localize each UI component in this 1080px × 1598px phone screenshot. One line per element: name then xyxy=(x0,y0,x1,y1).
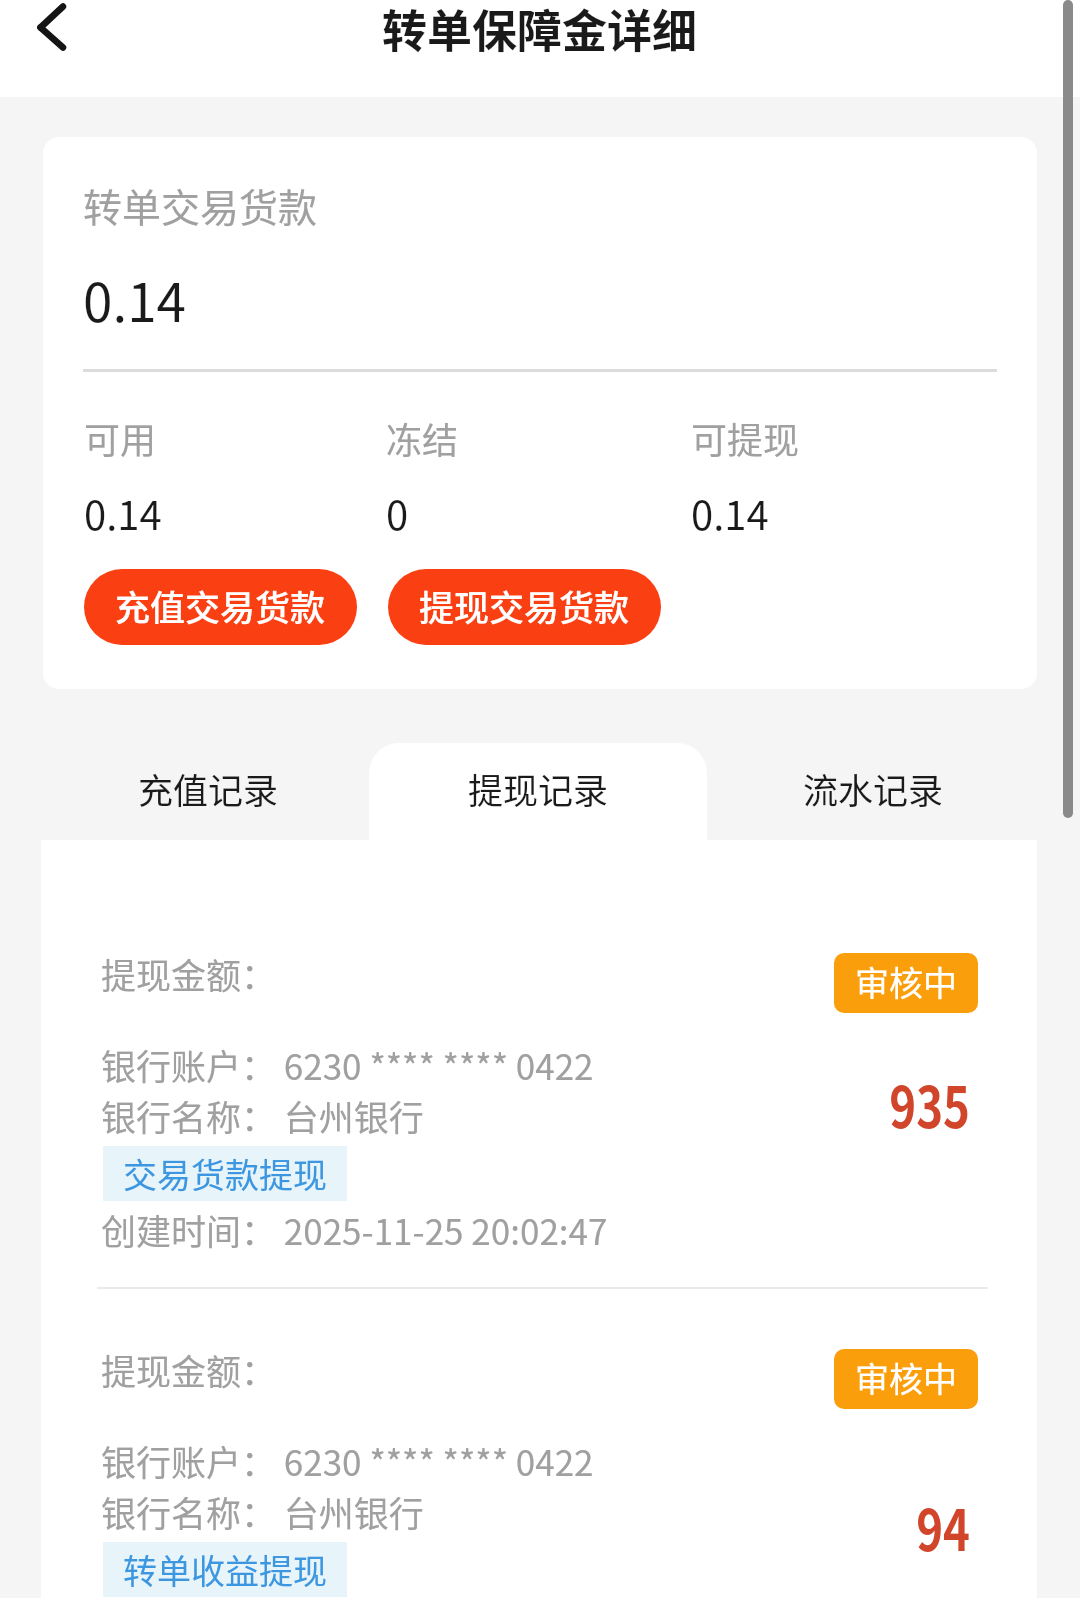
staticText: 提现金额： xyxy=(101,948,277,999)
staticText: 银行名称： 台州银行 xyxy=(101,1090,424,1141)
button[interactable]: 充值记录 xyxy=(41,743,369,843)
staticText: 充值记录 xyxy=(138,763,279,814)
staticText: 0.14 xyxy=(84,484,162,542)
staticText: 转单交易货款 xyxy=(83,177,318,233)
button[interactable]: 充值交易货款 xyxy=(84,569,357,645)
staticText: 0.14 xyxy=(83,261,186,338)
staticText: 审核中 xyxy=(855,957,957,1006)
button[interactable]: 提现记录 xyxy=(369,743,707,843)
staticText: 提现金额： xyxy=(101,1344,277,1395)
button[interactable]: 审核中 xyxy=(834,1349,978,1409)
staticText: 充值交易货款 xyxy=(115,580,326,631)
staticText: 提现记录 xyxy=(468,763,609,814)
button[interactable]: 提现交易货款 xyxy=(388,569,661,645)
staticText: 转单保障金详细 xyxy=(382,0,698,61)
staticText: 提现交易货款 xyxy=(419,580,630,631)
staticText: 0.14 xyxy=(691,484,769,542)
staticText: 可用 xyxy=(84,412,157,464)
button[interactable]: Back xyxy=(12,0,68,56)
button[interactable] xyxy=(41,840,1037,1288)
staticText: 0 xyxy=(386,484,409,542)
staticText: 可提现 xyxy=(691,412,800,464)
staticText: 935 xyxy=(757,1062,970,1145)
staticText: 银行名称： 台州银行 xyxy=(101,1486,424,1537)
staticText: 转单收益提现 xyxy=(123,1545,327,1594)
staticText: 流水记录 xyxy=(803,763,944,814)
staticText: 94 xyxy=(757,1485,970,1568)
button[interactable] xyxy=(41,1289,1037,1598)
button[interactable]: 流水记录 xyxy=(707,743,1037,843)
staticText: 创建时间： 2025-11-25 20:02:47 xyxy=(101,1204,608,1255)
staticText: 银行账户： 6230 **** **** 0422 xyxy=(101,1435,594,1486)
staticText: 审核中 xyxy=(855,1353,957,1402)
staticText: 交易货款提现 xyxy=(123,1149,327,1198)
staticText: 银行账户： 6230 **** **** 0422 xyxy=(101,1039,594,1090)
staticText: 冻结 xyxy=(386,412,459,464)
button[interactable]: 审核中 xyxy=(834,953,978,1013)
